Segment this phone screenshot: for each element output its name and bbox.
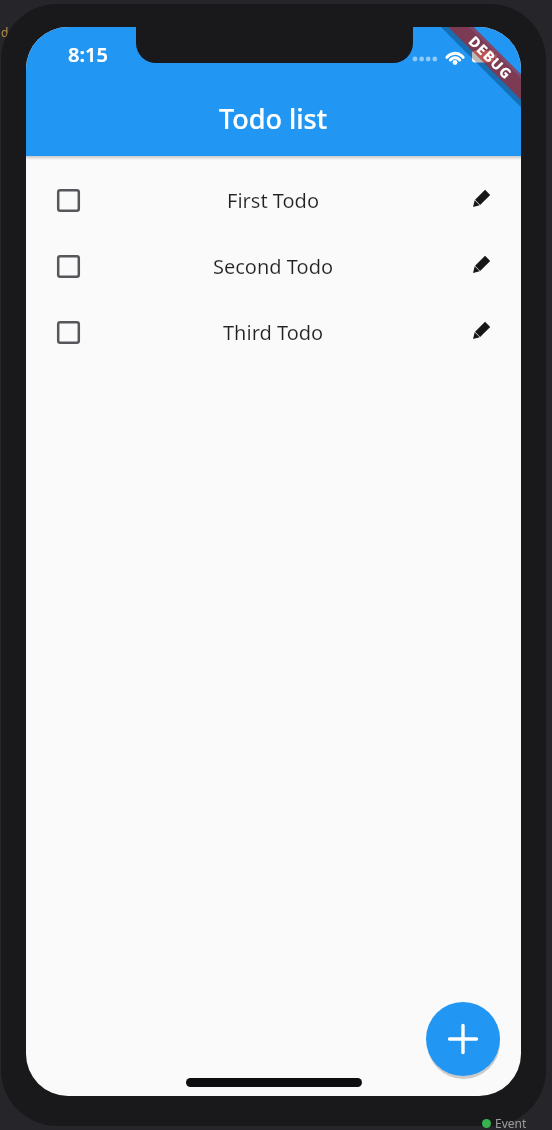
button[interactable]: Second Todo: [26, 233, 521, 299]
staticText: Second Todo: [213, 253, 334, 280]
button[interactable]: [57, 189, 80, 212]
button[interactable]: [426, 1002, 500, 1076]
staticText: Event: [495, 1115, 527, 1130]
staticText: Todo list: [219, 100, 328, 136]
button[interactable]: [467, 253, 493, 279]
staticText: Third Todo: [223, 319, 324, 346]
staticText: da: [1, 24, 16, 40]
button[interactable]: [467, 319, 493, 345]
button[interactable]: [467, 187, 493, 213]
staticText: First Todo: [227, 187, 320, 214]
button[interactable]: First Todo: [26, 167, 521, 233]
button[interactable]: [57, 321, 80, 344]
staticText: 8:15: [68, 41, 108, 68]
button[interactable]: Third Todo: [26, 299, 521, 365]
staticText: DEBUG: [465, 31, 517, 83]
button[interactable]: [57, 255, 80, 278]
